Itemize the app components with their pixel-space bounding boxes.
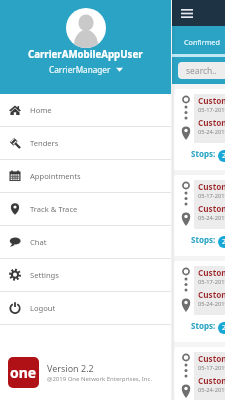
staticText: CarrierAMobileAppUser — [28, 48, 143, 61]
staticText: 05-17-2019 13:00 CDT — [198, 278, 225, 286]
staticText: Confirmed — [184, 37, 220, 47]
button[interactable]: search.. — [178, 62, 225, 79]
button[interactable]: Tenders — [0, 127, 171, 159]
staticText: Appointments — [30, 171, 81, 181]
staticText: Home — [30, 105, 52, 115]
staticText: Tenders — [30, 138, 59, 148]
staticText: 05-24-2019 08:00 CDT — [198, 128, 225, 136]
staticText: Customer B - Austin TX — [198, 289, 225, 300]
staticText: search.. — [186, 65, 217, 77]
staticText: Customer B - Austin TX — [198, 203, 225, 214]
button[interactable]: Customer A - Dallas TX — [174, 261, 225, 342]
staticText: Version 2.2 — [47, 362, 94, 374]
staticText: Customer A - Dallas TX — [198, 181, 225, 192]
button[interactable]: CarrierManager — [49, 64, 123, 75]
staticText: Settings — [30, 270, 59, 280]
button[interactable]: Customer A - Dallas TX — [174, 89, 225, 170]
button[interactable]: Open navigation menu — [172, 0, 198, 26]
staticText: Customer B - Austin TX — [198, 375, 225, 386]
staticText: Stops: — [191, 234, 216, 245]
button[interactable]: Settings — [0, 259, 171, 291]
staticText: Logout — [30, 303, 56, 313]
staticText: 05-17-2019 13:00 CDT — [198, 364, 225, 372]
staticText: CarrierManager — [49, 64, 111, 75]
staticText: 05-24-2019 08:00 CDT — [198, 300, 225, 308]
staticText: 05-17-2019 13:00 CDT — [198, 192, 225, 200]
staticText: 05-24-2019 08:00 CDT — [198, 214, 225, 222]
staticText: Customer A - Dallas TX — [198, 95, 225, 106]
staticText: Stops: — [191, 148, 216, 159]
button[interactable]: Logout — [0, 292, 171, 324]
staticText: Chat — [30, 237, 47, 247]
staticText: 2 — [222, 237, 225, 247]
staticText: 05-17-2019 13:00 CDT — [198, 106, 225, 114]
staticText: 2 — [222, 151, 225, 161]
staticText: one — [10, 363, 37, 382]
button[interactable]: Customer A - Dallas TX — [174, 175, 225, 256]
staticText: Stops: — [191, 320, 216, 331]
button[interactable]: Home — [0, 94, 171, 126]
staticText: Customer A - Dallas TX — [198, 353, 225, 364]
staticText: Customer B - Austin TX — [198, 117, 225, 128]
button[interactable]: Appointments — [0, 160, 171, 192]
button[interactable]: Track & Trace — [0, 193, 171, 225]
staticText: 2 — [222, 323, 225, 333]
staticText: @2019 One Network Enterprises, Inc. — [47, 375, 153, 383]
staticText: 05-24-2019 08:00 CDT — [198, 386, 225, 394]
button[interactable]: Confirmed — [172, 26, 225, 57]
button[interactable]: Customer A - Dallas TX — [174, 347, 225, 400]
button[interactable]: Chat — [0, 226, 171, 258]
staticText: Track & Trace — [30, 204, 78, 214]
staticText: Customer A - Dallas TX — [198, 267, 225, 278]
